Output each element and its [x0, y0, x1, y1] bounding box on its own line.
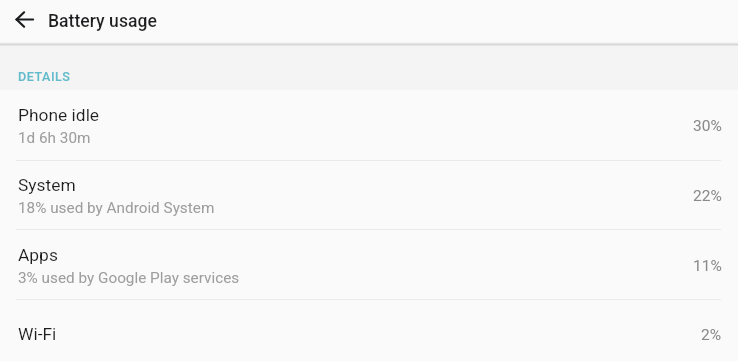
staticText: Wi-Fi	[18, 324, 57, 344]
staticText: 30%	[693, 117, 722, 135]
button[interactable]: System	[0, 160, 738, 230]
staticText: 18% used by Android System	[18, 199, 215, 217]
staticText: 3% used by Google Play services	[18, 269, 240, 287]
button[interactable]: Navigate up	[9, 4, 40, 35]
button[interactable]: Wi-Fi	[0, 299, 738, 361]
staticText: 1d 6h 30m	[18, 129, 91, 147]
button[interactable]: Phone idle	[0, 90, 738, 160]
staticText: System	[18, 175, 76, 195]
staticText: 22%	[693, 187, 722, 205]
staticText: 2%	[701, 326, 722, 344]
button[interactable]: Apps	[0, 230, 738, 300]
staticText: Battery usage	[48, 11, 157, 32]
staticText: Apps	[18, 245, 58, 265]
staticText: 11%	[693, 257, 722, 275]
staticText: DETAILS	[18, 69, 71, 84]
staticText: Phone idle	[18, 105, 100, 125]
